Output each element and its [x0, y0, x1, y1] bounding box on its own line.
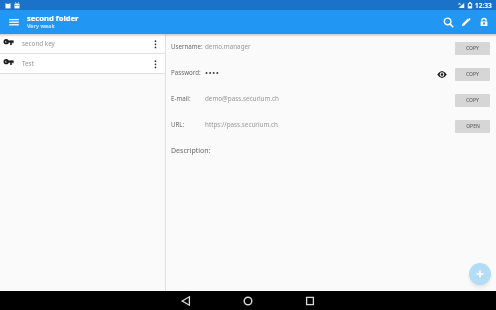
- button[interactable]: Home: [236, 291, 260, 310]
- staticText: URL:: [171, 120, 185, 128]
- staticText: OPEN: [466, 123, 480, 130]
- staticText: E-mail:: [171, 94, 191, 102]
- button[interactable]: Back: [174, 291, 198, 310]
- button[interactable]: COPY: [455, 68, 490, 81]
- staticText: COPY: [466, 97, 479, 104]
- staticText: second key: [22, 39, 55, 48]
- staticText: Username:: [171, 42, 203, 50]
- staticText: second folder: [27, 13, 79, 23]
- button[interactable]: Lock: [475, 13, 493, 31]
- button[interactable]: Add: [469, 263, 491, 285]
- staticText: COPY: [466, 45, 479, 52]
- button[interactable]: More options: [147, 36, 163, 52]
- staticText: demo.manager: [205, 42, 251, 51]
- staticText: https://pass.securium.ch: [205, 120, 278, 129]
- button[interactable]: OPEN: [455, 120, 490, 133]
- button[interactable]: COPY: [455, 42, 490, 55]
- button[interactable]: Search: [439, 13, 457, 31]
- staticText: Password:: [171, 68, 201, 76]
- staticText: Very weak: [27, 22, 55, 30]
- staticText: Description:: [171, 146, 211, 156]
- staticText: Test: [22, 59, 34, 68]
- button[interactable]: More options: [147, 56, 163, 72]
- button[interactable]: Show password: [436, 68, 448, 80]
- staticText: 12:33: [475, 1, 492, 10]
- button[interactable]: second key: [0, 34, 165, 53]
- button[interactable]: COPY: [455, 94, 490, 107]
- button[interactable]: Test: [0, 54, 165, 73]
- button[interactable]: Edit: [457, 13, 475, 31]
- staticText: demo@pass.securium.ch: [205, 94, 279, 103]
- staticText: COPY: [466, 71, 479, 78]
- button[interactable]: Menu: [2, 10, 26, 34]
- button[interactable]: Recents: [298, 291, 322, 310]
